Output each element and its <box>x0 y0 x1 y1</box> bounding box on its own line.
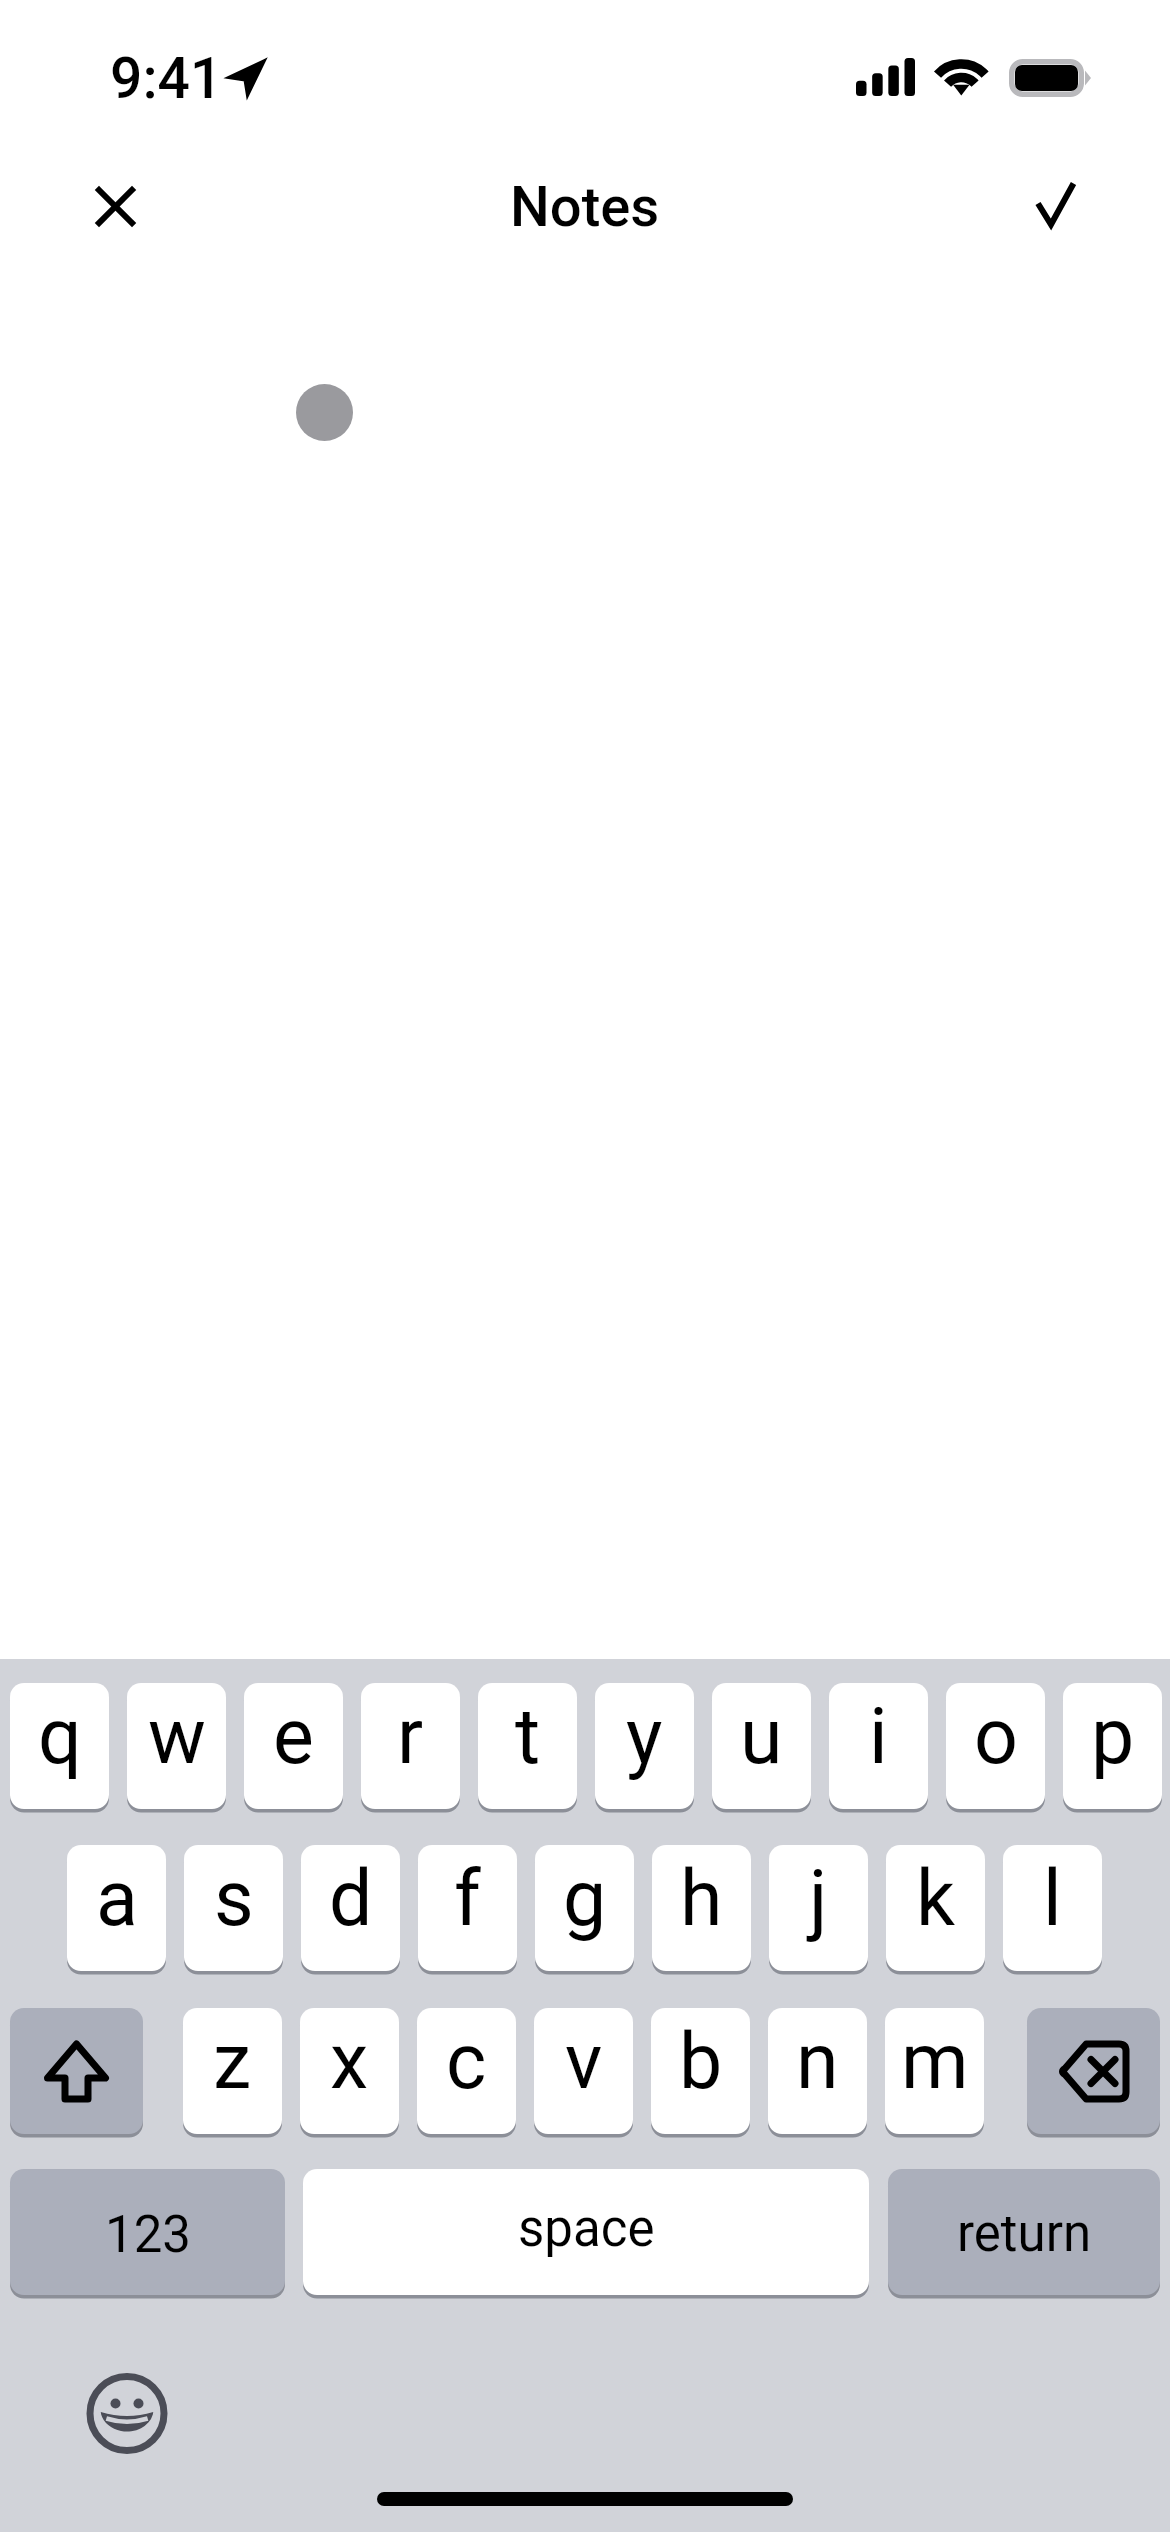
button[interactable]: u <box>712 1683 811 1809</box>
staticText: a <box>96 1854 138 1944</box>
staticText: c <box>446 2017 487 2107</box>
staticText: w <box>148 1692 206 1782</box>
staticText: Notes <box>510 174 660 240</box>
button[interactable]: j <box>769 1845 868 1971</box>
button[interactable]: e <box>244 1683 343 1809</box>
staticText: y <box>626 1692 663 1782</box>
staticText: z <box>213 2017 252 2107</box>
staticText: n <box>796 2017 839 2107</box>
staticText: t <box>515 1692 541 1782</box>
button[interactable]: p <box>1063 1683 1162 1809</box>
button[interactable]: l <box>1003 1845 1102 1971</box>
staticText: g <box>563 1854 607 1944</box>
staticText: space <box>518 2199 655 2259</box>
button[interactable]: i <box>829 1683 928 1809</box>
staticText: l <box>1043 1854 1062 1944</box>
staticText: i <box>869 1692 888 1782</box>
button[interactable]: t <box>478 1683 577 1809</box>
button[interactable]: w <box>127 1683 226 1809</box>
button[interactable]: space <box>303 2169 869 2295</box>
button[interactable]: m <box>885 2008 984 2134</box>
staticText: x <box>330 2017 369 2107</box>
button[interactable]: n <box>768 2008 867 2134</box>
button[interactable]: 123 <box>10 2169 285 2295</box>
staticText: m <box>901 2017 969 2107</box>
button[interactable]: r <box>361 1683 460 1809</box>
staticText: k <box>916 1854 956 1944</box>
staticText: r <box>397 1692 424 1782</box>
staticText: 9:41 <box>110 45 223 112</box>
button[interactable]: o <box>946 1683 1045 1809</box>
staticText: b <box>679 2017 723 2107</box>
button[interactable]: Shift <box>10 2008 143 2134</box>
staticText: u <box>740 1692 783 1782</box>
button[interactable]: Close <box>60 151 170 261</box>
button[interactable]: s <box>184 1845 283 1971</box>
button[interactable]: k <box>886 1845 985 1971</box>
button[interactable]: Emoji keyboard <box>83 2369 171 2457</box>
staticText: j <box>809 1854 828 1944</box>
button[interactable]: return <box>888 2169 1160 2295</box>
button[interactable]: f <box>418 1845 517 1971</box>
staticText: return <box>957 2204 1092 2264</box>
button[interactable]: d <box>301 1845 400 1971</box>
button[interactable]: c <box>417 2008 516 2134</box>
button[interactable]: h <box>652 1845 751 1971</box>
staticText: 123 <box>105 2205 191 2265</box>
button[interactable]: Backspace <box>1027 2008 1160 2134</box>
button[interactable]: x <box>300 2008 399 2134</box>
staticText: e <box>273 1692 314 1782</box>
button[interactable]: b <box>651 2008 750 2134</box>
button[interactable]: v <box>534 2008 633 2134</box>
button[interactable]: Done <box>1000 151 1110 261</box>
staticText: f <box>454 1854 481 1944</box>
button[interactable]: y <box>595 1683 694 1809</box>
staticText: s <box>214 1854 254 1944</box>
button[interactable]: z <box>183 2008 282 2134</box>
button[interactable]: q <box>10 1683 109 1809</box>
button[interactable]: a <box>67 1845 166 1971</box>
staticText: d <box>329 1854 373 1944</box>
staticText: v <box>565 2017 603 2107</box>
button[interactable]: g <box>535 1845 634 1971</box>
staticText: o <box>974 1692 1018 1782</box>
staticText: q <box>38 1692 82 1782</box>
staticText: h <box>680 1854 723 1944</box>
staticText: p <box>1091 1692 1135 1782</box>
